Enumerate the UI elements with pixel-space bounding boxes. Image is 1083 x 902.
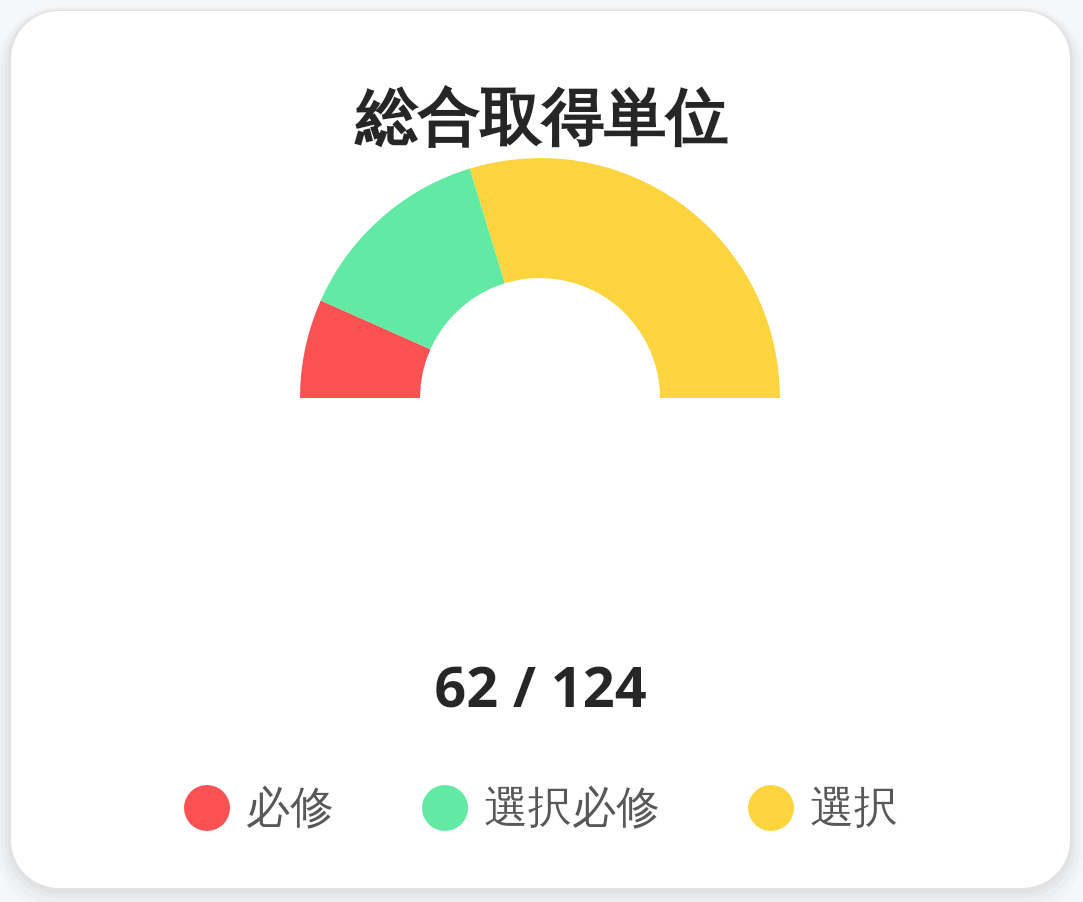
button[interactable]: 選択必修 — [420, 774, 662, 841]
other: 取得単位の内訳グラフ — [300, 158, 780, 638]
staticText: 選択 — [810, 780, 898, 835]
staticText: 62 / 124 — [434, 647, 647, 723]
button[interactable]: 必修 — [182, 774, 336, 841]
staticText: 選択必修 — [484, 780, 660, 835]
staticText: 必修 — [246, 780, 334, 835]
staticText: 総合取得単位 — [355, 79, 727, 157]
button[interactable]: 選択 — [746, 774, 900, 841]
button[interactable]: 総合取得単位 — [11, 11, 1070, 888]
